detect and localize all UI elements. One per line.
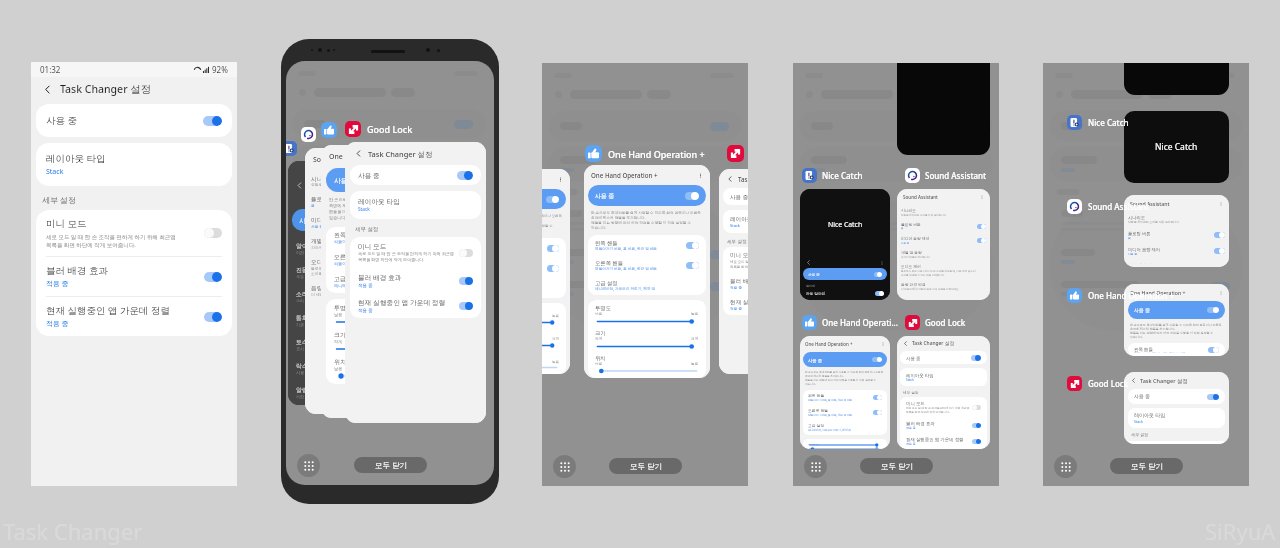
staticText: One Hand Operation + [608,148,705,160]
button[interactable]: One Hand Operation + [584,165,710,378]
button[interactable]: 미니 모드 [36,210,232,256]
staticText: 되돌아가기 버튼, 홈 버튼, 최근 앱 버튼 [595,266,657,271]
staticText: Stack [46,167,64,177]
staticText: 투명도 [808,443,820,445]
staticText: Sound Assistant [903,194,938,200]
staticText: 낮음 [595,312,603,317]
button[interactable]: 현재 실행중인 앱 가운데 정렬 [36,297,232,336]
staticText: 개별 앱 음량 [1128,262,1152,264]
staticText: 현재 실행중인 앱 가운데 정렬 [358,298,446,307]
button[interactable]: Apps [804,455,827,478]
button[interactable]: 블러 배경 효과 [36,257,232,296]
staticText: Sound Assistant [925,170,987,181]
staticText: 미디어 음량 제어 [901,236,930,241]
button[interactable] [459,249,473,257]
staticText: 되돌아가기 버튼, 홈 버튼, 최근 앱 버튼 [808,413,853,417]
staticText: 블루투스 혹은 다른 디바이스로 소리를 재생할 때, 다른 앱의 음소리 소리… [311,266,424,276]
button[interactable]: One Hand Operation + [800,336,890,449]
button[interactable]: Apps [553,455,576,478]
staticText: 세부 설정 [1131,432,1149,438]
button[interactable]: Nice Catch [800,189,890,300]
button[interactable]: Sound Assistant [897,189,990,300]
staticText: 모든 진동 [296,274,314,280]
staticText: 크기 [334,331,346,339]
staticText: Nice Catch [1088,117,1129,128]
staticText: 끔 [901,227,904,230]
button[interactable]: Sound Assistant [542,169,570,374]
staticText: 낮음 [334,366,343,371]
button[interactable] [972,405,981,410]
staticText: 세부 설정 [42,194,77,205]
button[interactable] [204,312,222,322]
staticText: 음량 간격 변경 [901,282,926,287]
staticText: Nice Catch [828,220,863,229]
button[interactable] [203,116,222,126]
staticText: 소리 없음 [296,290,322,298]
button[interactable]: Back [40,82,54,96]
staticText: Stack [906,378,914,382]
button[interactable] [972,439,981,444]
button[interactable] [457,171,473,180]
button[interactable]: 레이아웃 타입 [36,143,232,186]
staticText: 시나리오 [1128,215,1146,220]
button[interactable]: Good Lock [1124,372,1229,444]
button[interactable]: 모두 닫기 [860,458,933,474]
staticText: 01:32 [40,64,61,75]
staticText: Task Changer 설정 [60,82,152,96]
button[interactable] [204,228,222,238]
button[interactable] [459,302,473,310]
staticText: Good Lock [1088,378,1129,389]
button[interactable]: Sound Assistant [1124,195,1229,267]
staticText: 투명도 [334,304,352,312]
staticText: 세부 설정 [355,225,379,233]
button[interactable] [972,423,981,428]
staticText: 사용 중 [730,193,748,201]
button[interactable]: Good Lock [897,336,990,449]
staticText: 세로 모드 일 때 한 손 조작을 편하게 하기 위해 최근앱 목록을 화면 하… [358,251,454,263]
staticText: 레이아웃 타입 [906,372,934,378]
button[interactable]: Apps [297,454,320,477]
staticText: Sound Assistant [1088,201,1150,212]
staticText: 자동 알아둬 [806,291,826,296]
button[interactable]: Nice Catch [1124,111,1229,183]
staticText: 더 세밀하게/더 거칠게 음량 간격 조절을 선택하세요 [311,292,399,297]
button[interactable]: Apps [1054,455,1077,478]
button[interactable]: Good Lock [719,169,748,374]
button[interactable]: Sound Assistant [305,148,446,414]
staticText: 고급 설정 [808,423,825,428]
staticText: 투명도 [595,305,611,312]
button[interactable]: Good Lock [345,142,486,423]
button[interactable]: 모두 닫기 [609,458,682,474]
button[interactable]: 사용 중 [36,104,232,137]
staticText: Task Changer 설정 [368,149,433,159]
staticText: 되돌아가기 버튼, 홈 버튼, 최근 앱 버튼 [808,398,853,402]
staticText: 음량 간격 변경 [311,284,349,292]
staticText: 애니메이션, 가로모드 맞추기, 제외 앱 [595,286,656,291]
staticText: 블루투스 혹은 다른 디바이스로 소리를 재생할 때, 다른 앱의 음소리 소리… [901,269,976,276]
button[interactable] [204,272,222,282]
staticText: One Hand Operation + [1130,289,1186,296]
button[interactable]: One Hand Operation + [1124,284,1229,356]
button[interactable]: One Hand Operation + [321,145,462,418]
staticText: 사용 중 [334,176,356,185]
button[interactable]: Nice Catch [288,161,429,405]
staticText: 애니메이션, 가로모드 맞추기, 제외 앱 [334,283,402,289]
button[interactable]: 모두 닫기 [354,457,427,473]
staticText: 사용 중 [901,241,910,244]
button[interactable] [1207,394,1219,400]
staticText: Task Changer 설정 [912,340,955,347]
staticText: 모두 닫기 [630,461,662,471]
staticText: 레이아웃 타입 [358,197,400,206]
staticText: 더 세밀하게/더 거칠게 음량 간격 조절을 선택하세요 [901,287,959,290]
button[interactable]: 모두 닫기 [1110,458,1183,474]
staticText: 시나리오 [311,175,334,182]
staticText: One Hand Operation + [805,341,853,347]
staticText: 한 손으로도 휴대전화를 쉽게 사용할 수 있도록 화면 왼쪽이나 오른쪽 측면… [1130,323,1222,339]
staticText: 오른쪽 핸들 [595,259,624,266]
button[interactable] [971,355,981,361]
staticText: 현재 실행중인 앱 가운데 정렬 [46,304,170,317]
staticText: 오디오 제어 [311,258,342,266]
staticText: 저장 중 [296,394,310,400]
button[interactable] [459,277,473,285]
